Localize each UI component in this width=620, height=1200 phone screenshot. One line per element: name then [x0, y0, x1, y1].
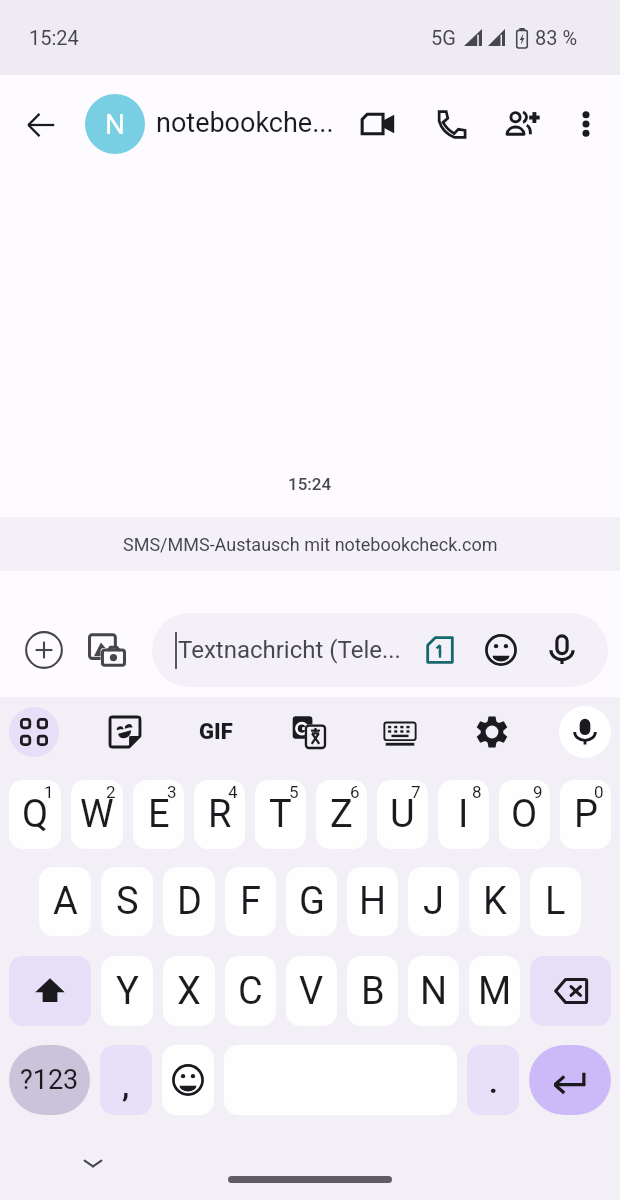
staticText: 7 — [411, 782, 421, 802]
button[interactable]: Enter — [529, 1045, 611, 1115]
button[interactable]: Z — [316, 780, 367, 849]
button[interactable]: F — [225, 867, 276, 936]
button[interactable]: J — [408, 867, 459, 936]
button[interactable]: Emoji — [162, 1045, 214, 1115]
button[interactable]: Voice message — [540, 628, 584, 672]
staticText: 9 — [533, 782, 543, 802]
staticText: 3 — [167, 782, 177, 802]
staticText: G — [299, 879, 325, 924]
button[interactable]: I — [438, 780, 489, 849]
button[interactable]: U — [377, 780, 428, 849]
button[interactable]: L — [530, 867, 581, 936]
button[interactable]: N — [408, 956, 459, 1026]
staticText: 2 — [106, 782, 116, 802]
staticText: 0 — [594, 782, 604, 802]
staticText: 6 — [350, 782, 360, 802]
button[interactable]: Q — [9, 780, 61, 849]
staticText: notebookche... — [156, 107, 334, 139]
staticText: 1 — [44, 782, 54, 802]
button[interactable]: Call — [427, 100, 475, 148]
staticText: , — [122, 1069, 130, 1104]
button[interactable]: H — [347, 867, 398, 936]
button[interactable]: T — [255, 780, 306, 849]
staticText: A — [53, 879, 78, 924]
staticText: ?123 — [20, 1064, 79, 1096]
staticText: Q — [22, 792, 49, 837]
button[interactable]: O — [499, 780, 550, 849]
staticText: 15:24 — [29, 26, 79, 49]
staticText: SMS/MMS-Austausch mit notebookcheck.com — [123, 534, 498, 555]
button[interactable]: Voice input — [559, 706, 611, 758]
staticText: M — [478, 969, 512, 1014]
button[interactable]: Add people — [499, 100, 547, 148]
button[interactable]: E — [133, 780, 184, 849]
staticText: C — [238, 969, 263, 1014]
staticText: Z — [330, 792, 353, 837]
button[interactable]: P — [560, 780, 611, 849]
staticText: . — [489, 1065, 498, 1100]
button[interactable]: W — [71, 780, 123, 849]
staticText: H — [359, 879, 387, 924]
button[interactable]: Stickers — [101, 708, 149, 756]
staticText: N — [105, 108, 125, 141]
button[interactable]: Hide keyboard — [72, 1142, 114, 1184]
button[interactable]: M — [469, 956, 520, 1026]
button[interactable]: SIM 1 — [418, 628, 462, 672]
button[interactable]: ?123 — [9, 1045, 90, 1115]
staticText: L — [545, 879, 566, 924]
staticText: X — [177, 969, 201, 1014]
staticText: E — [148, 792, 170, 837]
staticText: U — [390, 792, 415, 837]
staticText: T — [269, 792, 292, 837]
staticText: P — [574, 792, 598, 837]
button[interactable]: Settings — [468, 708, 516, 756]
staticText: 4 — [228, 782, 238, 802]
staticText: W — [80, 792, 114, 837]
button[interactable]: More options — [564, 102, 608, 146]
staticText: 83 % — [535, 26, 578, 49]
button[interactable]: Video call — [354, 100, 402, 148]
button[interactable]: S — [101, 867, 153, 936]
button[interactable]: K — [469, 867, 520, 936]
button[interactable]: V — [286, 956, 337, 1026]
button[interactable]: A — [39, 867, 91, 936]
button[interactable]: B — [347, 956, 398, 1026]
button[interactable]: , — [100, 1045, 152, 1115]
staticText: R — [208, 792, 232, 837]
button[interactable]: Add attachment — [18, 624, 70, 676]
button[interactable]: Backspace — [530, 956, 611, 1026]
staticText: D — [177, 879, 202, 924]
button[interactable]: Back — [17, 101, 65, 149]
button[interactable]: Shift — [9, 956, 91, 1026]
staticText: 5 — [289, 782, 299, 802]
staticText: 8 — [472, 782, 482, 802]
button[interactable]: R — [194, 780, 245, 849]
staticText: K — [483, 879, 507, 924]
staticText: B — [361, 969, 385, 1014]
staticText: N — [420, 969, 448, 1014]
button[interactable]: Emoji — [479, 628, 523, 672]
staticText: GIF — [199, 719, 233, 745]
button[interactable]: G — [286, 867, 337, 936]
staticText: O — [511, 792, 538, 837]
button[interactable]: GIF — [192, 708, 240, 756]
staticText: 5G — [431, 26, 456, 49]
button[interactable]: Keyboard layout — [376, 708, 424, 756]
staticText: S — [116, 879, 139, 924]
button[interactable]: C — [225, 956, 276, 1026]
staticText: F — [240, 879, 262, 924]
button[interactable]: Apps — [9, 707, 59, 757]
staticText: 15:24 — [288, 474, 332, 494]
button[interactable]: Y — [101, 956, 153, 1026]
button[interactable]: D — [163, 867, 215, 936]
staticText: I — [458, 792, 469, 837]
staticText: J — [423, 879, 444, 924]
staticText: V — [299, 969, 324, 1014]
button[interactable]: X — [163, 956, 215, 1026]
button[interactable]: Translate — [285, 708, 333, 756]
button[interactable]: Textnachricht (Tele... — [152, 613, 608, 687]
button[interactable]: . — [467, 1045, 519, 1115]
staticText: Y — [116, 969, 139, 1014]
button[interactable]: Gallery — [81, 624, 133, 676]
